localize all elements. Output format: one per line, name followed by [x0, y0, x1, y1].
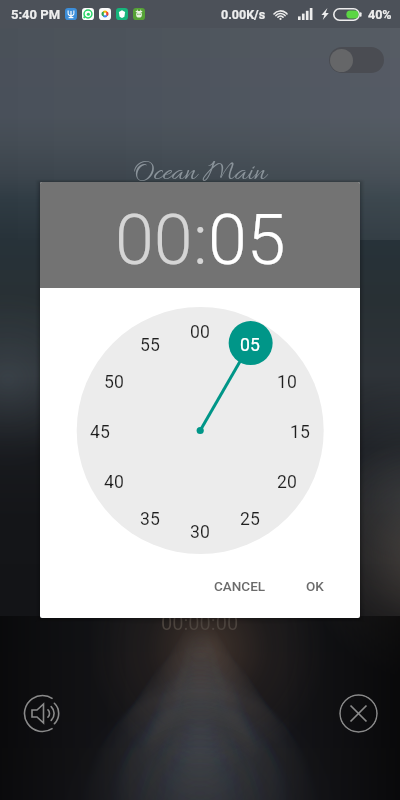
staticText: 00 — [115, 199, 193, 281]
staticText: CANCEL — [214, 578, 266, 594]
button[interactable]: 45 — [80, 420, 120, 444]
button[interactable]: Volume — [23, 694, 62, 733]
staticText: 05 — [208, 199, 286, 281]
staticText: 00 — [190, 322, 210, 343]
staticText: 30 — [190, 522, 210, 543]
staticText: 25 — [240, 509, 260, 530]
button[interactable]: Close — [339, 694, 378, 733]
button[interactable]: 30 — [180, 520, 220, 544]
button[interactable]: 10 — [267, 370, 307, 394]
staticText: 35 — [140, 509, 160, 530]
staticText: 50 — [104, 372, 124, 393]
button[interactable]: 20 — [267, 470, 307, 494]
staticText: 20 — [277, 472, 297, 493]
button[interactable]: 05 — [230, 333, 270, 357]
button[interactable]: 15 — [280, 420, 320, 444]
staticText: 15 — [290, 422, 310, 443]
button[interactable]: 00 — [115, 199, 193, 281]
button[interactable]: 50 — [94, 370, 134, 394]
staticText: 05 — [240, 335, 260, 356]
button[interactable]: 05 — [208, 199, 286, 281]
button[interactable]: 00 — [180, 320, 220, 344]
button[interactable]: OK — [296, 569, 334, 603]
staticText: 55 — [140, 335, 160, 356]
staticText: 10 — [277, 372, 297, 393]
button[interactable]: 40 — [94, 470, 134, 494]
staticText: 45 — [90, 422, 110, 443]
button[interactable]: Toggle — [329, 47, 384, 73]
staticText: 0.00K/s — [221, 7, 266, 22]
button[interactable]: 25 — [230, 507, 270, 531]
staticText: 5:40 PM — [11, 7, 61, 22]
button[interactable]: 35 — [130, 507, 170, 531]
button[interactable]: 55 — [130, 333, 170, 357]
staticText: OK — [306, 578, 324, 594]
staticText: Ocean Main — [133, 156, 267, 192]
button[interactable]: CANCEL — [204, 569, 276, 603]
staticText: 40% — [368, 7, 392, 22]
staticText: 00:00:00 — [161, 611, 239, 634]
staticText: 40 — [104, 472, 124, 493]
staticText: : — [193, 199, 208, 281]
